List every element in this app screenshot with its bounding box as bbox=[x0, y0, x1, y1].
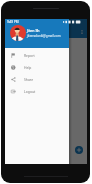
button[interactable]: Share bbox=[5, 73, 69, 85]
staticText: jitensolanki@gmail.com bbox=[27, 34, 61, 38]
staticText: Share bbox=[24, 77, 34, 82]
button[interactable]: Report bbox=[5, 49, 69, 61]
staticText: 9:49 PM bbox=[7, 20, 19, 24]
staticText: Logout bbox=[24, 89, 36, 94]
button[interactable]: Add bbox=[75, 146, 83, 154]
staticText: Report bbox=[24, 53, 35, 58]
staticText: Help bbox=[24, 65, 32, 70]
staticText: Jiten Sh bbox=[27, 28, 40, 33]
button[interactable]: Logout bbox=[5, 85, 69, 97]
button[interactable]: Help bbox=[5, 61, 69, 73]
